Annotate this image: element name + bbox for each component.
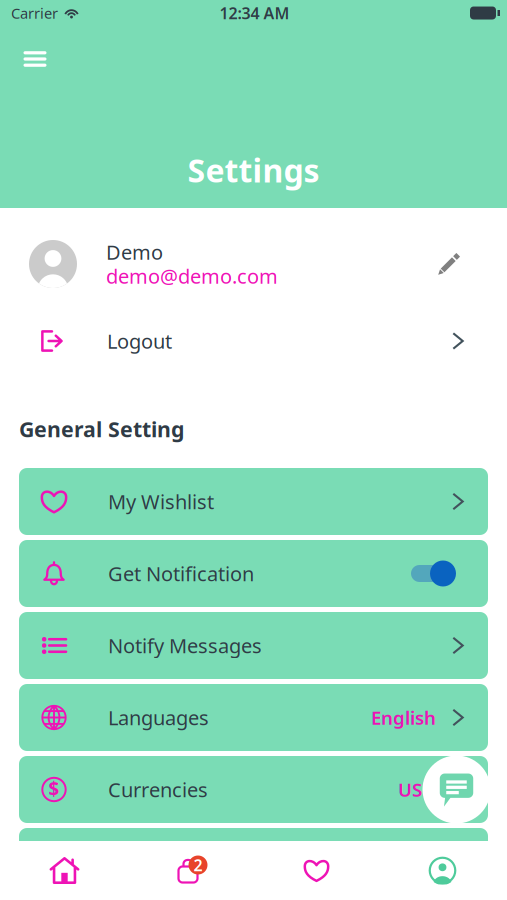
button[interactable]: Get Notification bbox=[19, 540, 488, 607]
button[interactable]: Notify Messages bbox=[19, 612, 488, 679]
staticText: My Wishlist bbox=[108, 488, 214, 515]
button[interactable]: Chat support bbox=[423, 756, 490, 823]
button[interactable]: Languages bbox=[19, 684, 488, 751]
button[interactable]: Home bbox=[1, 841, 127, 899]
button[interactable]: Wishlist bbox=[253, 841, 379, 899]
staticText: 2 bbox=[193, 854, 202, 876]
staticText: Logout bbox=[107, 328, 172, 354]
staticText: English bbox=[371, 705, 436, 730]
staticText: $ bbox=[48, 776, 59, 801]
button[interactable]: $ bbox=[19, 756, 488, 823]
staticText: USD bbox=[398, 777, 436, 802]
staticText: Get Notification bbox=[108, 560, 254, 587]
staticText: Carrier bbox=[11, 3, 58, 23]
staticText: Settings bbox=[187, 149, 319, 191]
staticText: Demo bbox=[106, 239, 163, 265]
staticText: demo@demo.com bbox=[106, 263, 278, 289]
button[interactable]: Edit profile bbox=[427, 242, 471, 286]
button[interactable]: Logout bbox=[0, 313, 507, 369]
staticText: Currencies bbox=[108, 776, 208, 803]
button[interactable]: Cart, 2 items bbox=[127, 841, 253, 899]
staticText: General Setting bbox=[19, 415, 184, 443]
staticText: Notify Messages bbox=[108, 632, 262, 659]
staticText: Languages bbox=[108, 704, 209, 731]
staticText: 12:34 AM bbox=[219, 2, 289, 24]
button[interactable]: Account bbox=[379, 841, 505, 899]
button[interactable]: Menu bbox=[13, 37, 57, 81]
button[interactable]: My Wishlist bbox=[19, 468, 488, 535]
